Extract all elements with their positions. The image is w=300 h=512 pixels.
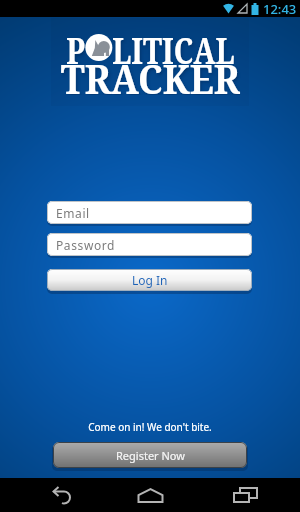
staticText: Register Now [116,448,185,463]
staticText: LITICAL [112,24,235,64]
button[interactable] [130,478,170,512]
button[interactable]: Email [47,201,252,224]
button[interactable] [41,478,81,512]
staticText: P [66,24,85,64]
staticText: Come on in! We don't bite. [0,420,300,434]
button[interactable]: Register Now [53,442,247,468]
staticText: Log In [132,272,168,288]
staticText: 12:43 [263,0,297,17]
staticText: TRACKER [61,51,240,95]
staticText: Email [56,205,90,221]
button[interactable] [225,478,265,512]
staticText: Password [56,237,116,253]
button[interactable]: Password [47,233,252,256]
button[interactable]: Log In [47,269,252,291]
